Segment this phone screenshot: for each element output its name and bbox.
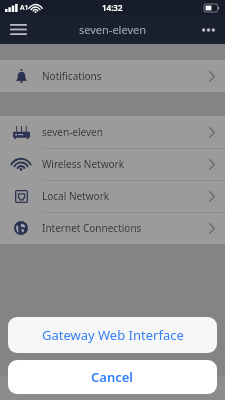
button[interactable]: Cancel — [8, 360, 217, 394]
button[interactable]: Gateway Web Interface — [8, 317, 217, 353]
staticText: Gateway Web Interface — [42, 326, 184, 344]
staticText: Internet Connections — [42, 221, 142, 235]
staticText: Settings — [182, 383, 213, 394]
staticText: Local Network — [42, 189, 110, 203]
staticText: Wireless Network — [42, 157, 125, 171]
button[interactable]: seven-eleven — [0, 116, 225, 148]
button[interactable]: Events — [57, 376, 113, 400]
button[interactable]: Notifications — [0, 60, 225, 92]
staticText: A1 — [20, 3, 29, 13]
button[interactable]: Statistics — [113, 376, 169, 400]
staticText: seven-eleven — [79, 22, 147, 37]
button[interactable]: Menu — [0, 15, 36, 44]
staticText: seven-eleven — [42, 125, 103, 139]
button[interactable]: Wireless Network — [0, 148, 225, 180]
button[interactable]: More options — [191, 15, 225, 44]
button[interactable]: Internet Connections — [0, 212, 225, 244]
staticText: Cancel — [91, 368, 134, 386]
button[interactable]: Settings — [169, 376, 225, 400]
staticText: 14:32 — [102, 2, 123, 13]
button[interactable]: Local Network — [0, 180, 225, 212]
button[interactable]: Home — [0, 376, 57, 400]
staticText: Notifications — [42, 69, 102, 83]
